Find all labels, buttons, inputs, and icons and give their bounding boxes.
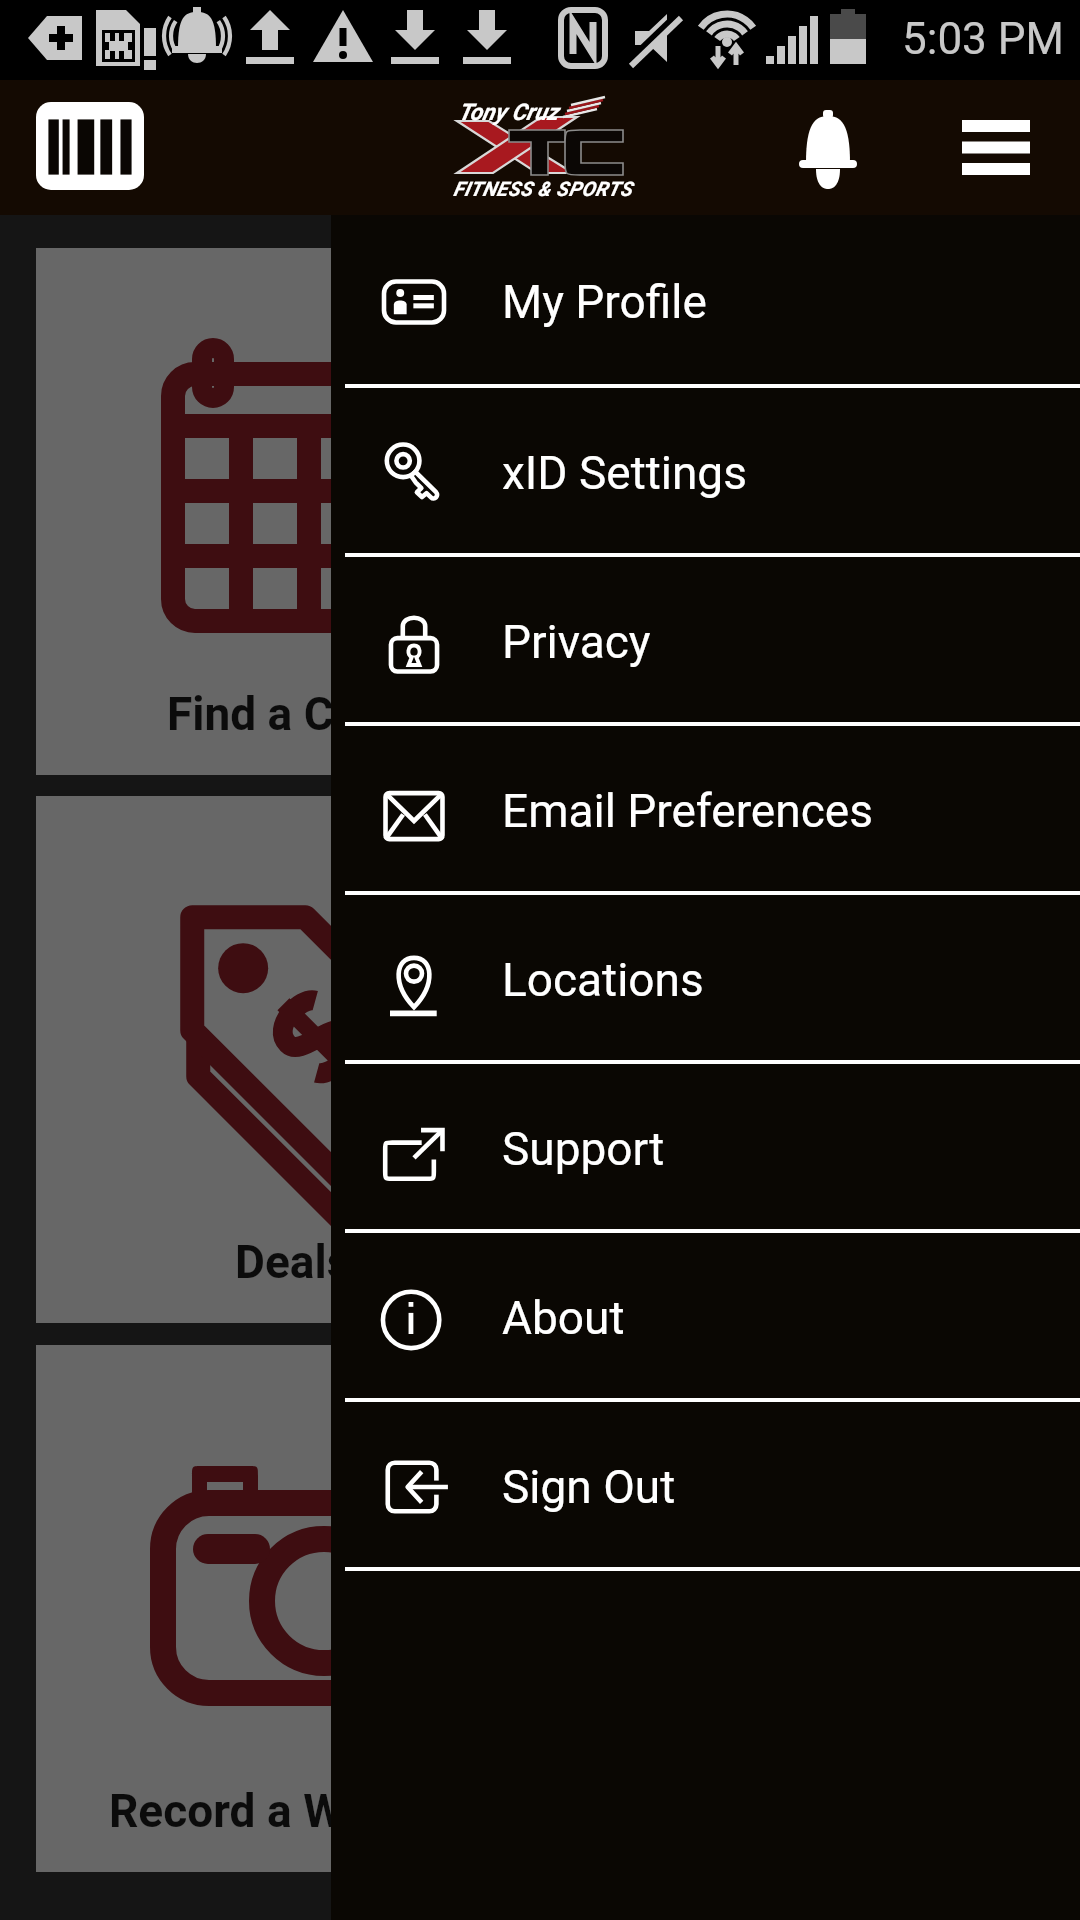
button[interactable]: Membership barcode [36,102,144,190]
staticText: Find a Class [167,687,419,741]
staticText: Record a Workout [109,1784,478,1838]
staticText: About [502,1291,625,1345]
staticText: FITNESS & SPORTS [453,177,632,200]
button[interactable]: Open navigation menu [930,80,1063,215]
button[interactable]: My Profile [331,215,1080,388]
button[interactable]: Notifications [760,80,895,215]
button[interactable]: Support [331,1064,1080,1233]
staticText: Privacy [502,615,651,669]
staticText: Support [502,1122,665,1176]
staticText: xID Settings [502,446,747,500]
button[interactable]: Find a Class [36,248,548,775]
staticText: 5:03 PM [902,13,1064,65]
button[interactable]: Record a Workout [36,1345,548,1872]
button[interactable]: Deals [36,796,548,1323]
staticText: Tony Cruz [458,99,559,126]
staticText: Locations [502,953,704,1007]
button[interactable]: Sign Out [331,1402,1080,1571]
button[interactable]: Email Preferences [331,726,1080,895]
button[interactable]: Locations [331,895,1080,1064]
staticText: Deals [235,1235,351,1289]
button[interactable]: xID Settings [331,388,1080,557]
staticText: Email Preferences [502,784,873,838]
staticText: My Profile [502,275,707,329]
staticText: Sign Out [502,1460,676,1514]
button[interactable]: About [331,1233,1080,1402]
button[interactable]: Privacy [331,557,1080,726]
